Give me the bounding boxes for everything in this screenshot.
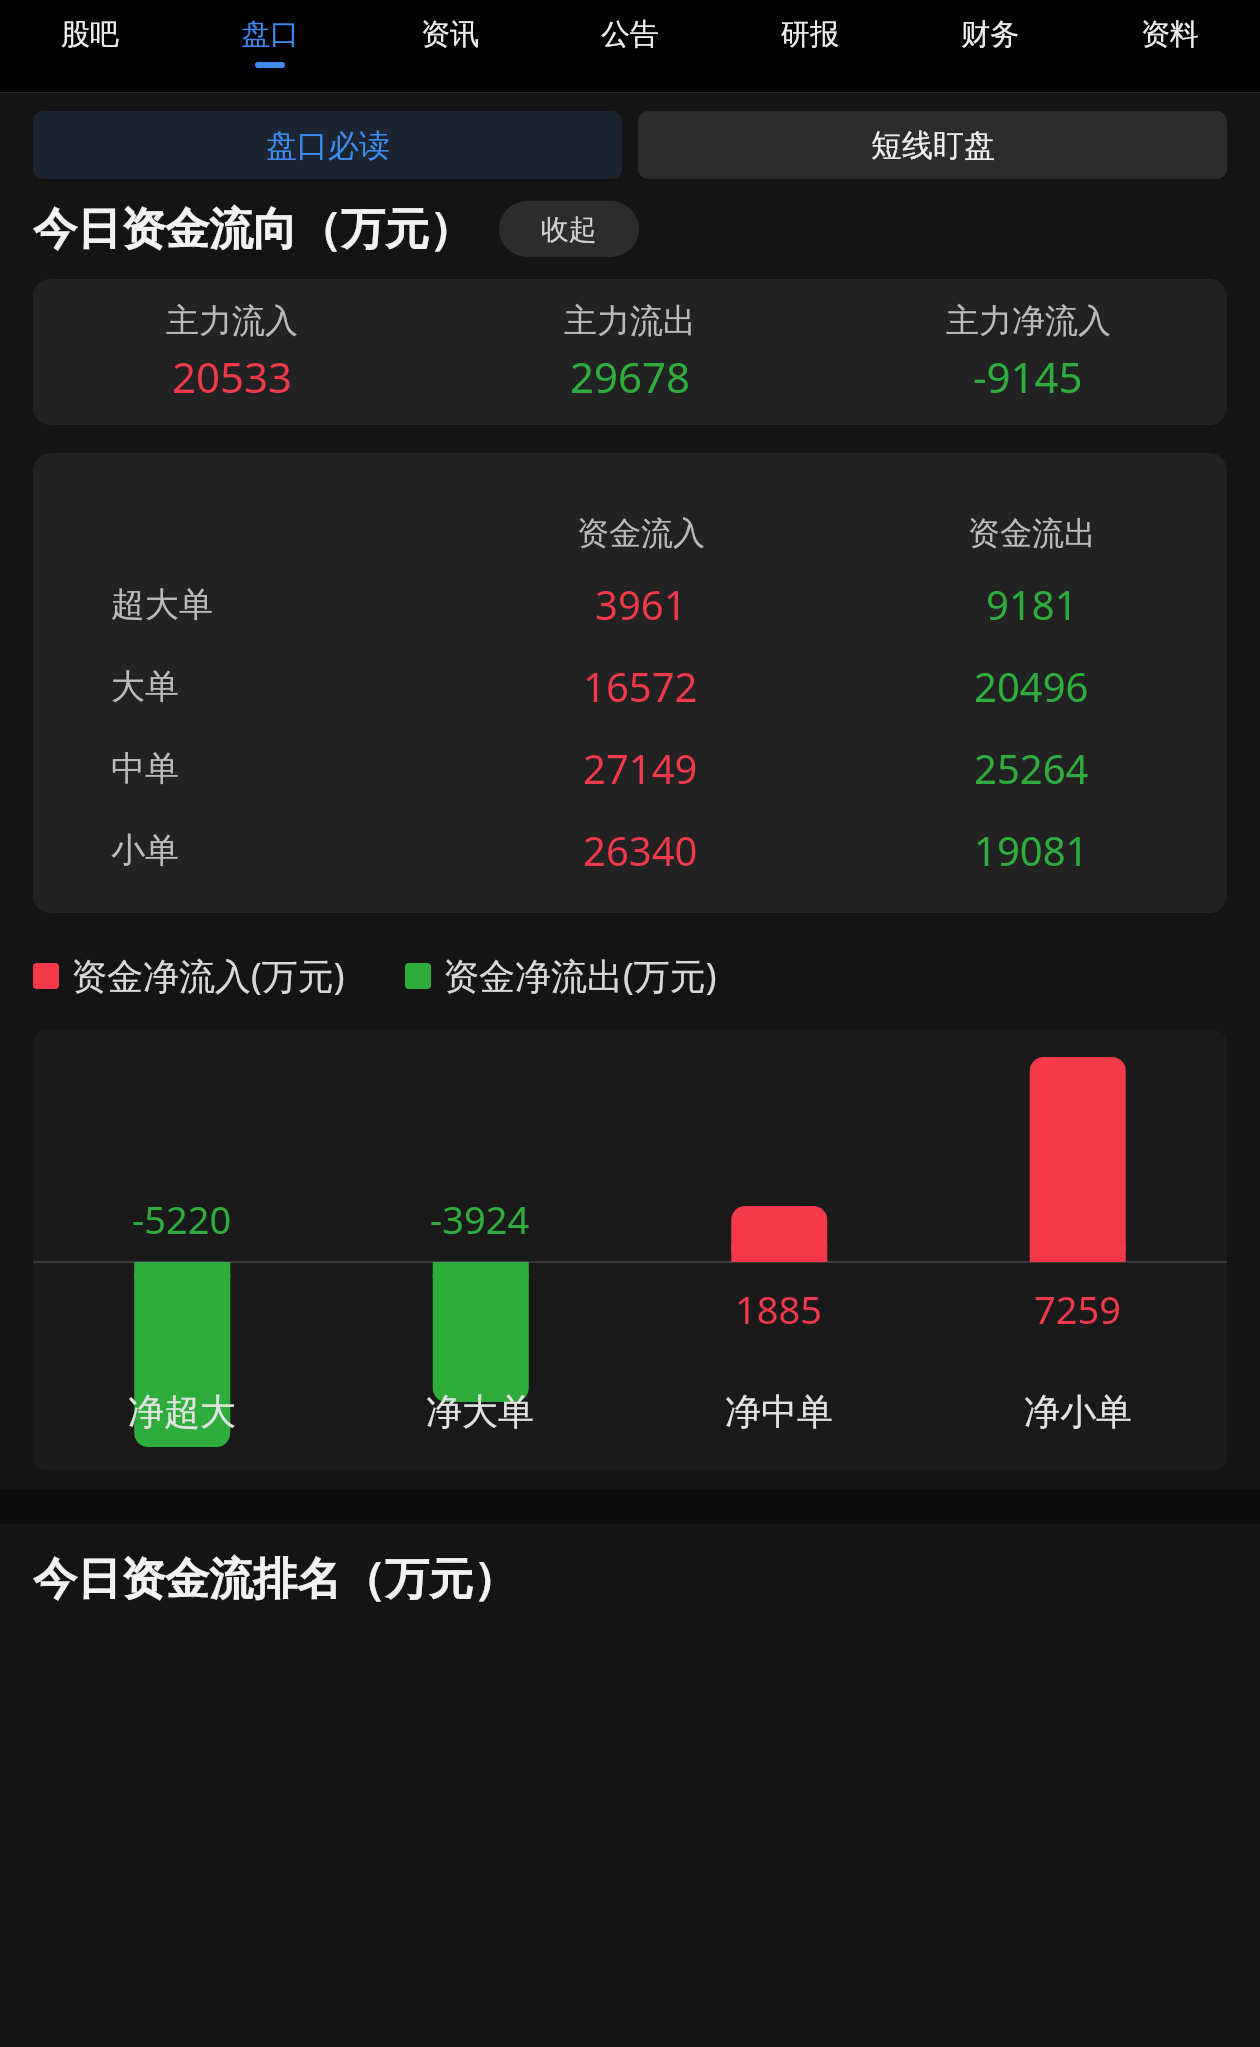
staticText: 净超大	[128, 1389, 236, 1434]
button[interactable]: 资讯	[360, 0, 540, 93]
staticText: 财务	[961, 16, 1019, 53]
staticText: 资金净流入(万元)	[71, 951, 345, 1000]
staticText: 1885	[735, 1283, 822, 1335]
staticText: 9181	[986, 577, 1078, 631]
staticText: 26340	[583, 823, 698, 877]
button[interactable]: 股吧	[0, 0, 180, 93]
button[interactable]: 资料	[1080, 0, 1260, 93]
staticText: 盘口	[241, 16, 299, 53]
staticText: 16572	[583, 659, 698, 713]
staticText: 股吧	[61, 16, 119, 53]
button[interactable]: 盘口	[180, 0, 360, 93]
staticText: 主力流出	[564, 300, 696, 342]
staticText: 收起	[541, 212, 597, 247]
button[interactable]: 主力流出	[431, 279, 829, 425]
button[interactable]: 超大单	[33, 563, 1227, 645]
button[interactable]: 主力净流入	[829, 279, 1227, 425]
button[interactable]: 收起	[499, 201, 639, 257]
staticText: 盘口必读	[266, 126, 390, 165]
staticText: 资金流出	[968, 513, 1096, 553]
staticText: -3924	[430, 1193, 530, 1245]
staticText: -5220	[132, 1193, 232, 1245]
staticText: 中单	[111, 747, 179, 790]
staticText: 超大单	[111, 583, 213, 626]
staticText: 小单	[111, 829, 179, 872]
staticText: 短线盯盘	[871, 126, 995, 165]
staticText: 今日资金流向（万元）	[33, 202, 473, 257]
button[interactable]: 小单	[33, 809, 1227, 891]
button[interactable]: 盘口必读	[33, 111, 622, 179]
staticText: 19081	[974, 823, 1089, 877]
button[interactable]: 财务	[900, 0, 1080, 93]
staticText: -9145	[973, 348, 1083, 405]
staticText: 大单	[111, 665, 179, 708]
staticText: 公告	[601, 16, 659, 53]
staticText: 主力净流入	[946, 300, 1111, 342]
button[interactable]: 大单	[33, 645, 1227, 727]
staticText: 今日资金流排名（万元）	[33, 1552, 517, 1607]
staticText: 研报	[781, 16, 839, 53]
staticText: 20496	[974, 659, 1089, 713]
staticText: 资金流入	[577, 513, 705, 553]
staticText: 25264	[974, 741, 1089, 795]
staticText: 资讯	[421, 16, 479, 53]
staticText: 20533	[172, 348, 293, 405]
staticText: 7259	[1034, 1283, 1121, 1335]
button[interactable]: 公告	[540, 0, 720, 93]
staticText: 29678	[570, 348, 691, 405]
staticText: 27149	[583, 741, 698, 795]
button[interactable]: 中单	[33, 727, 1227, 809]
staticText: 净大单	[426, 1389, 534, 1434]
staticText: 3961	[595, 577, 687, 631]
button[interactable]: 短线盯盘	[638, 111, 1227, 179]
button[interactable]: 主力流入	[33, 279, 431, 425]
staticText: 净中单	[725, 1389, 833, 1434]
staticText: 资金净流出(万元)	[443, 951, 717, 1000]
button[interactable]: 研报	[720, 0, 900, 93]
staticText: 主力流入	[166, 300, 298, 342]
staticText: 资料	[1141, 16, 1199, 53]
staticText: 净小单	[1024, 1389, 1132, 1434]
